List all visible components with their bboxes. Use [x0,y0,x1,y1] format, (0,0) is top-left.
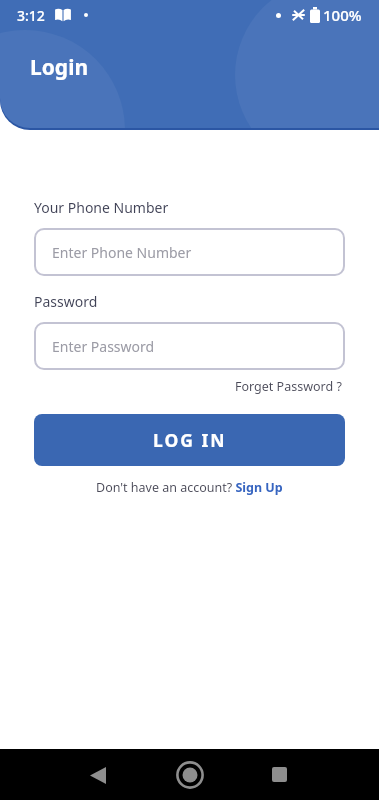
staticText: Don't have an account? Sign Up [96,479,283,496]
button[interactable]: Don't have an account? Sign Up [34,479,345,496]
staticText: Enter Password [52,337,155,356]
staticText: Login [30,53,89,82]
staticText: Your Phone Number [34,198,169,217]
button[interactable]: Enter Phone Number [34,228,345,276]
button[interactable]: LOG IN [34,414,345,466]
staticText: Enter Phone Number [52,243,192,262]
button[interactable]: Enter Password [34,322,345,370]
staticText: 3:12 [17,6,45,25]
button[interactable]: Forget Password ? [235,378,342,395]
button[interactable] [176,761,204,789]
staticText: Password [34,292,98,311]
staticText: 100% [323,5,362,25]
staticText: LOG IN [153,428,227,452]
button[interactable] [270,765,289,784]
button[interactable] [89,766,107,784]
